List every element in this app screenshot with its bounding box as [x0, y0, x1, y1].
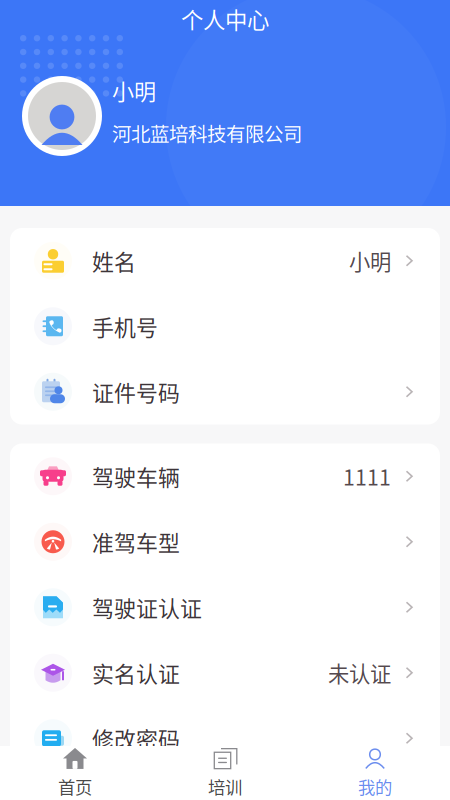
staticText: 手机号 [92, 310, 158, 342]
staticText: 实名认证 [92, 657, 180, 689]
button[interactable]: 证件号码 [10, 359, 440, 424]
staticText: 修改密码 [92, 722, 180, 754]
staticText: 证件号码 [92, 376, 180, 408]
staticText: 1111 [343, 461, 391, 492]
staticText: 驾驶证认证 [92, 591, 202, 623]
staticText: 个人中心 [181, 3, 269, 35]
staticText: 准驾车型 [92, 526, 180, 558]
button[interactable]: 手机号 [10, 293, 440, 359]
button[interactable]: 修改密码 [10, 705, 440, 771]
staticText: 河北蓝培科技有限公司 [112, 119, 302, 147]
staticText: 首页 [58, 774, 92, 799]
staticText: 未认证 [328, 657, 391, 688]
button[interactable]: 准驾车型 [10, 509, 440, 574]
button[interactable]: 姓名 [10, 228, 440, 293]
staticText: 驾驶车辆 [92, 460, 180, 492]
staticText: 我的 [358, 774, 392, 799]
button[interactable]: 驾驶证认证 [10, 574, 440, 640]
button[interactable]: 首页 [0, 746, 150, 800]
button[interactable]: 培训 [150, 746, 300, 800]
button[interactable]: 实名认证 [10, 640, 440, 705]
button[interactable]: 我的 [300, 746, 450, 800]
staticText: 小明 [112, 74, 156, 106]
button[interactable]: 驾驶车辆 [10, 443, 440, 509]
staticText: 姓名 [92, 245, 136, 277]
staticText: 培训 [208, 774, 242, 799]
staticText: 小明 [349, 245, 391, 276]
